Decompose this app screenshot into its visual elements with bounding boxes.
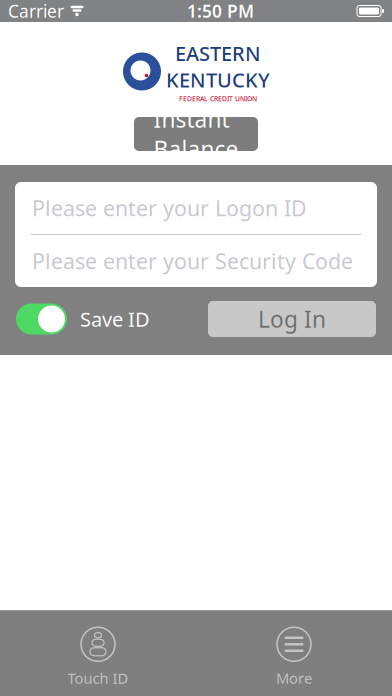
- staticText: More: [276, 668, 312, 688]
- staticText: Log In: [258, 304, 326, 334]
- button[interactable]: Log In: [208, 301, 376, 337]
- button[interactable]: Save ID: [16, 303, 150, 334]
- button[interactable]: More: [246, 626, 342, 688]
- staticText: Please enter your Security Code: [32, 247, 353, 275]
- staticText: Instant Balance: [153, 104, 238, 164]
- staticText: Please enter your Logon ID: [32, 194, 307, 222]
- button[interactable]: Touch ID: [50, 626, 146, 688]
- staticText: Save ID: [80, 306, 150, 332]
- staticText: KENTUCKY: [166, 67, 270, 93]
- staticText: EASTERN: [175, 40, 261, 67]
- staticText: Touch ID: [67, 668, 128, 688]
- button[interactable]: Instant Balance: [134, 117, 258, 151]
- staticText: 1:50 PM: [187, 0, 254, 22]
- staticText: FEDERAL CREDIT UNION: [179, 94, 257, 103]
- staticText: Carrier: [8, 0, 64, 22]
